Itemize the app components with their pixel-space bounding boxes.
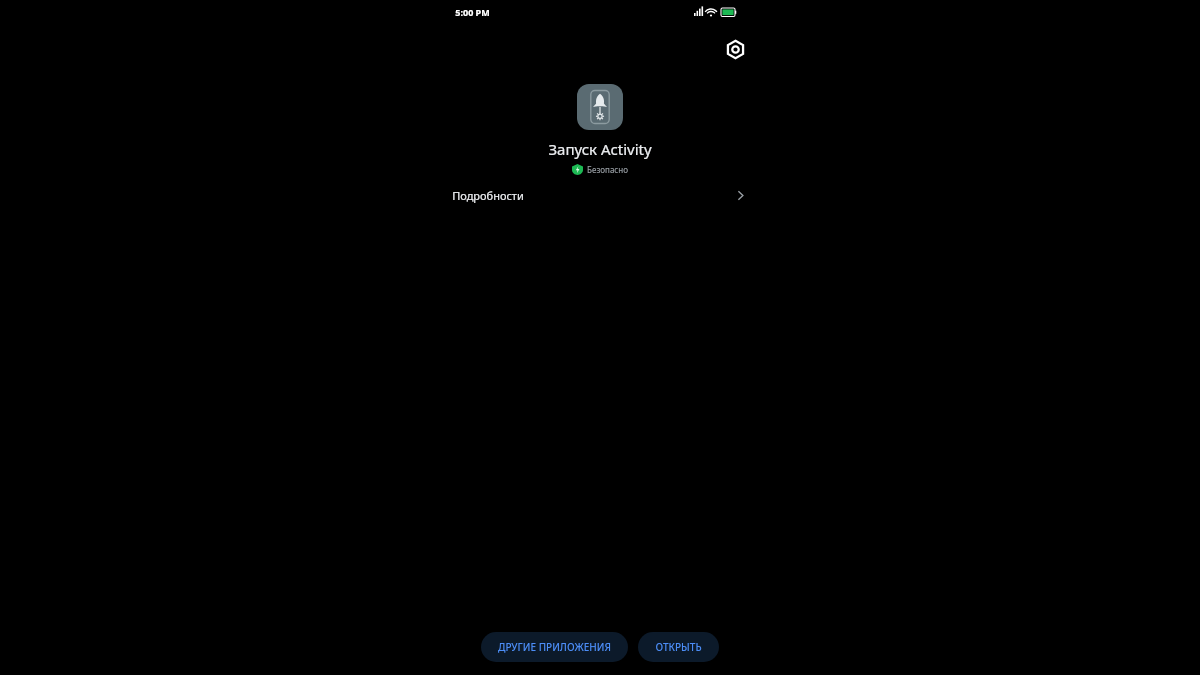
- staticText: Запуск Activity: [548, 139, 652, 159]
- button[interactable]: Подробности: [452, 181, 748, 209]
- staticText: 5:00 PM: [455, 6, 490, 18]
- staticText: ОТКРЫТЬ: [655, 640, 702, 654]
- button[interactable]: ДРУГИЕ ПРИЛОЖЕНИЯ: [481, 632, 628, 662]
- staticText: ДРУГИЕ ПРИЛОЖЕНИЯ: [498, 640, 611, 654]
- button[interactable]: ОТКРЫТЬ: [638, 632, 719, 662]
- staticText: Безопасно: [587, 164, 628, 175]
- staticText: Подробности: [452, 188, 524, 203]
- button[interactable]: Settings: [717, 31, 753, 67]
